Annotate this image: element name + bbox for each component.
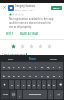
button[interactable]: Close [2,5,7,10]
button[interactable]: ч [15,80,20,89]
button[interactable]: Тест [0,55,22,61]
staticText: ч [17,83,19,86]
button[interactable]: Enter [54,90,63,99]
button[interactable]: ш [39,62,45,70]
staticText: Свой отзыв тест [2,53,26,55]
button[interactable]: к [16,62,21,70]
staticText: ш [41,65,44,68]
button[interactable]: о [33,71,39,79]
button[interactable]: д [45,71,51,79]
button[interactable]: Свой отзыв тест [2,53,62,55]
button[interactable]: Space [23,90,47,99]
staticText: б [48,83,50,86]
staticText: Тесты [50,57,57,60]
staticText: REPLY [6,32,14,35]
staticText: REPLY [53,7,60,10]
staticText: ф [3,74,5,77]
button[interactable]: щ [45,62,51,70]
button[interactable]: MARK AS SPAM [19,31,40,36]
staticText: г [35,65,37,68]
button[interactable]: . [48,90,53,99]
staticText: ?123 [3,93,8,96]
button[interactable]: п [21,71,27,79]
staticText: Тесто [29,57,36,60]
button[interactable]: у [11,62,16,70]
button[interactable]: й [1,62,6,70]
button[interactable]: Backspace [57,80,63,89]
staticText: о [35,74,37,77]
staticText: ю [53,83,55,86]
staticText: а [18,74,20,77]
staticText: е [23,65,25,68]
staticText: me at all properly. [9,25,32,29]
button[interactable]: ь [42,80,46,89]
button[interactable]: х [57,62,63,70]
staticText: Тест [8,57,14,60]
button[interactable]: т [37,80,41,89]
staticText: л [41,74,43,77]
staticText: я [11,83,13,86]
staticText: х [59,65,61,68]
button[interactable]: в [11,71,16,79]
staticText: у [13,65,15,68]
button[interactable]: р [27,71,33,79]
staticText: No registration available in the app [9,17,54,21]
button[interactable]: ц [6,62,11,70]
button[interactable]: REPLY [5,31,15,36]
button[interactable]: ю [52,80,56,89]
staticText: щ [47,65,50,68]
staticText: в [13,74,15,77]
button[interactable]: с [21,80,26,89]
staticText: к [18,65,20,68]
staticText: т [38,83,40,86]
button[interactable]: Rate 5 stars [46,43,53,50]
staticText: MARK AS SPAM [20,32,39,35]
button[interactable]: е [21,62,27,70]
button[interactable]: м [27,80,31,89]
staticText: п [23,74,25,77]
staticText: д [47,74,49,77]
staticText: ц [8,65,10,68]
button[interactable]: Rate 1 stars [10,43,17,50]
button[interactable]: а [16,71,21,79]
button[interactable]: Shift [1,80,8,89]
button[interactable]: REPLY [51,6,62,10]
button[interactable]: я [9,80,14,89]
staticText: м [28,83,30,86]
staticText: з [53,65,55,68]
button[interactable]: Тесты [43,55,64,61]
button[interactable]: Тесто [22,55,43,61]
button[interactable]: Rate 4 stars [37,43,44,50]
staticText: н [29,65,31,68]
button[interactable]: Emoji [10,90,16,99]
button[interactable]: ж [51,71,57,79]
staticText: ж [53,74,55,77]
button[interactable]: Rate 3 stars [28,43,35,50]
button[interactable]: н [27,62,33,70]
staticText: й [3,65,5,68]
staticText: ь [43,83,45,86]
button[interactable]: Rate 2 stars [19,43,26,50]
button[interactable]: з [51,62,57,70]
button[interactable]: Symbols [1,90,9,99]
button[interactable]: , [17,90,22,99]
button[interactable]: б [47,80,51,89]
button[interactable]: ф [1,71,6,79]
button[interactable]: ы [6,71,11,79]
staticText: и [33,83,35,86]
staticText: э [59,74,61,77]
staticText: р [29,74,31,77]
staticText: с [23,83,25,86]
staticText: Oct 3, 2017 · v2.1 [15,8,35,11]
staticText: . [50,93,51,96]
staticText: Sergey Ivanov [15,4,36,8]
staticText: ы [8,74,10,77]
staticText: and the service does not work for [9,21,52,25]
button[interactable]: э [57,71,63,79]
button[interactable]: и [32,80,36,89]
button[interactable]: л [39,71,45,79]
button[interactable]: г [33,62,39,70]
